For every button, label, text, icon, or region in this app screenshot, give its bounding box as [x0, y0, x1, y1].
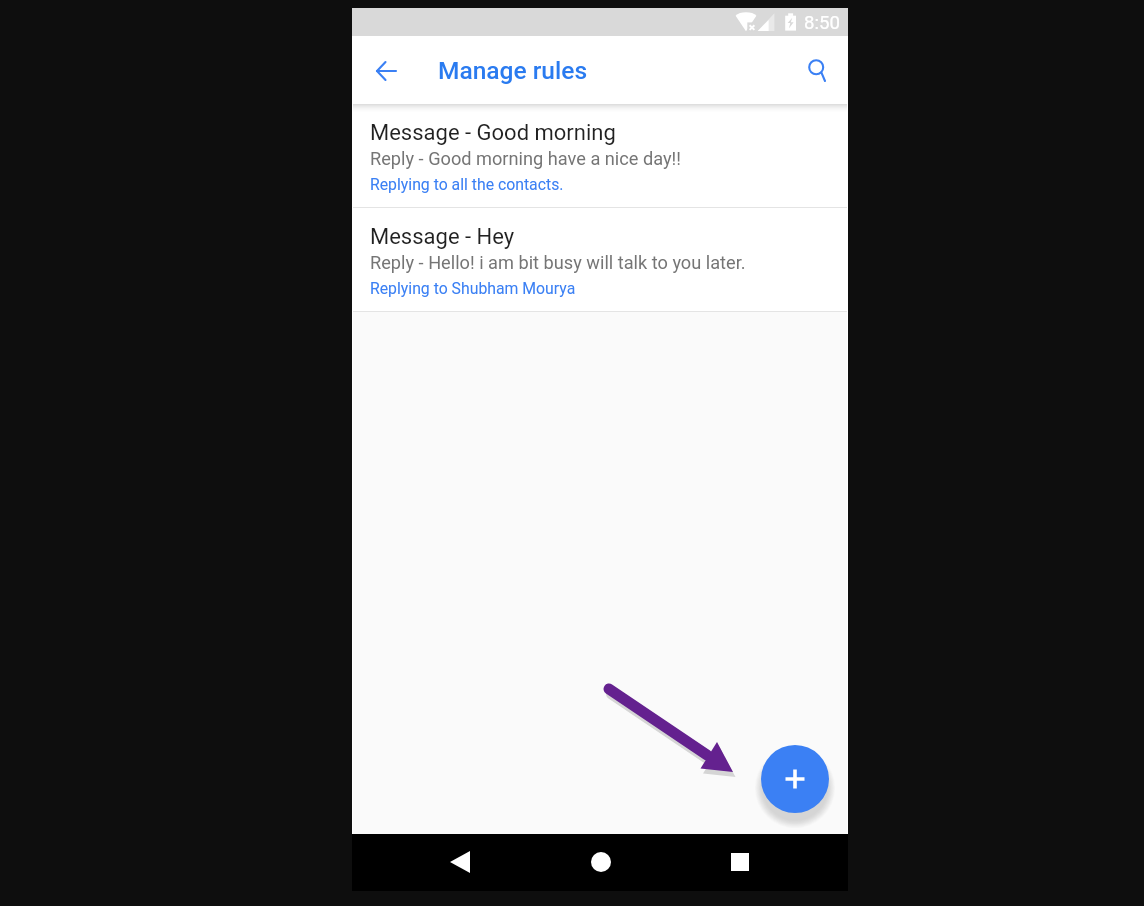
- button[interactable]: Search: [793, 46, 841, 94]
- button[interactable]: Recents: [715, 844, 764, 880]
- button[interactable]: Home: [576, 844, 625, 880]
- staticText: Message - Good morning: [370, 120, 616, 146]
- staticText: Replying to all the contacts.: [370, 175, 564, 194]
- staticText: Replying to Shubham Mourya: [370, 279, 576, 298]
- staticText: Reply - Good morning have a nice day!!: [370, 148, 681, 169]
- staticText: 8:50: [804, 12, 840, 34]
- staticText: Reply - Hello! i am bit busy will talk t…: [370, 252, 746, 273]
- staticText: Message - Hey: [370, 224, 515, 250]
- button[interactable]: Back: [435, 844, 484, 880]
- button[interactable]: Back: [362, 47, 410, 95]
- button[interactable]: Message - Good morning: [353, 104, 847, 207]
- button[interactable]: Message - Hey: [353, 208, 847, 311]
- staticText: Manage rules: [438, 56, 588, 85]
- button[interactable]: Add rule: [761, 745, 829, 813]
